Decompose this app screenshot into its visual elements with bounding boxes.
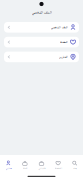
button[interactable]: المفضلة — [4, 37, 79, 47]
button[interactable]: العناوين — [4, 52, 79, 62]
staticText: حسابي — [5, 166, 11, 170]
button[interactable]: بحث — [66, 160, 83, 170]
staticText: السلة — [22, 166, 27, 170]
button[interactable]: حسابي — [0, 160, 17, 170]
button[interactable]: الملف الشخصي — [4, 22, 79, 33]
staticText: الملف الشخصي — [50, 24, 67, 30]
button[interactable]: السلة — [17, 160, 33, 170]
button[interactable]: طلباتي — [33, 160, 50, 170]
staticText: المفضلة — [59, 39, 67, 45]
staticText: العناوين — [58, 54, 67, 60]
staticText: طلباتي — [38, 166, 45, 170]
button[interactable]: المفضلة — [50, 160, 66, 170]
staticText: الملف الشخصي — [31, 9, 51, 16]
staticText: المفضلة — [54, 166, 62, 170]
staticText: بحث — [73, 166, 77, 170]
